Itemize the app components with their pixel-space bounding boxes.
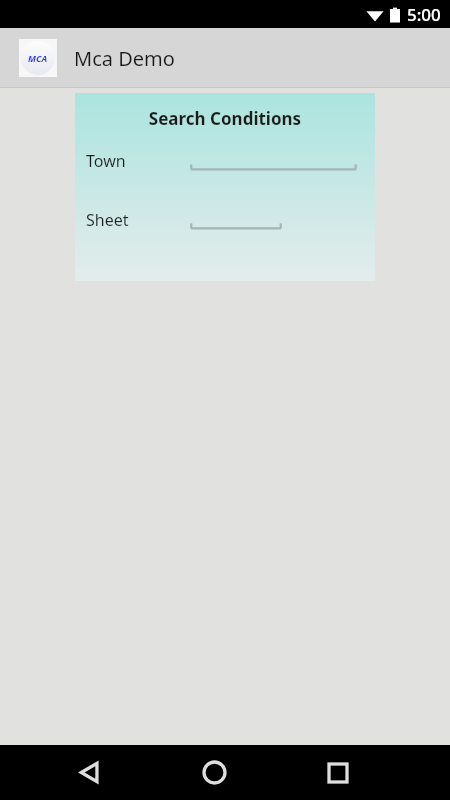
staticText: Town	[86, 150, 126, 172]
button[interactable]: Home	[187, 745, 241, 800]
staticText: Mca Demo	[74, 45, 175, 72]
staticText: 5:00	[407, 3, 441, 26]
staticText: Search Conditions	[75, 107, 375, 130]
button[interactable]: Sheet	[75, 209, 375, 243]
staticText: MCA	[28, 52, 48, 64]
button[interactable]: Recent apps	[311, 745, 365, 800]
button[interactable]: Back	[63, 745, 117, 800]
button[interactable]: Search Conditions	[75, 93, 375, 281]
button[interactable]: Town	[75, 150, 375, 184]
staticText: Sheet	[86, 209, 129, 231]
